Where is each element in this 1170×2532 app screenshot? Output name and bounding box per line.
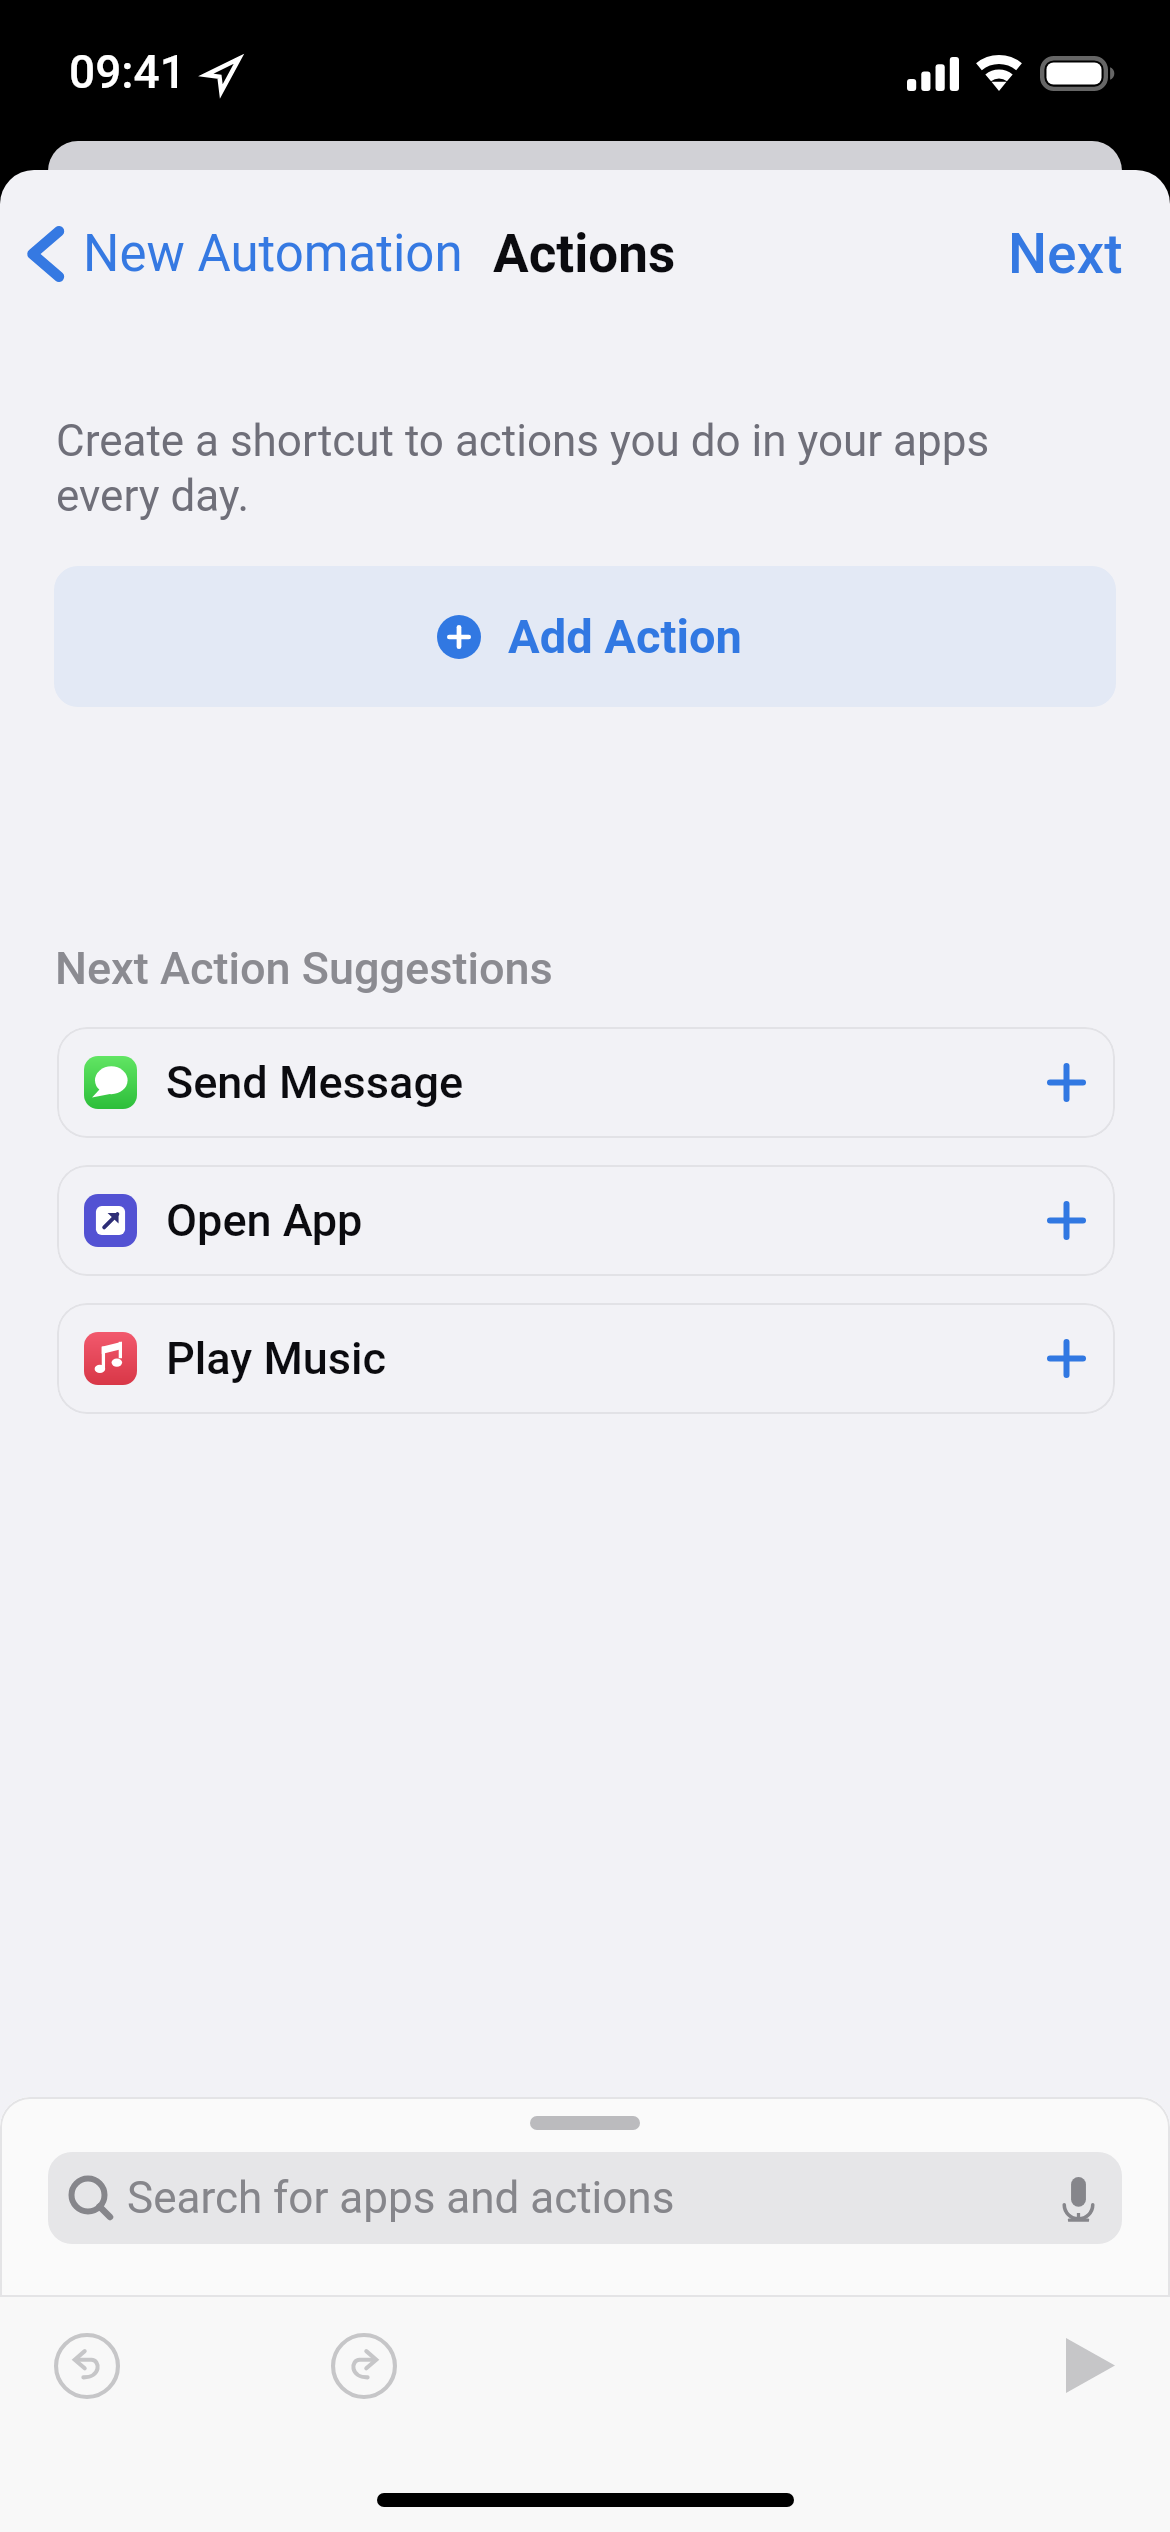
button[interactable]: Add Play Music [1049,1341,1084,1376]
staticText: Search for apps and actions [127,2172,675,2224]
staticText: Create a shortcut to actions you do in y… [56,415,1001,522]
button[interactable]: Undo [54,2333,120,2399]
staticText: New Automation [83,224,463,284]
staticText: Send Message [166,1056,464,1109]
button[interactable]: Play Music [57,1303,1115,1414]
staticText: Actions [493,223,676,285]
staticText: Open App [166,1194,363,1247]
staticText: 09:41 [69,45,186,99]
button[interactable]: Open App [57,1165,1115,1276]
button[interactable]: Add Open App [1049,1203,1084,1238]
staticText: Play Music [166,1332,387,1385]
staticText: Next Action Suggestions [55,942,553,995]
button[interactable]: New Automation [0,208,473,300]
button[interactable]: Add Send Message [1049,1065,1084,1100]
button[interactable]: Search for apps and actions [48,2152,1122,2244]
button[interactable]: Next [978,208,1170,300]
staticText: Add Action [508,609,742,664]
button[interactable]: Redo [331,2333,397,2399]
button[interactable]: Add Action [54,566,1116,707]
other: Dictate [1063,2177,1094,2223]
button[interactable]: Send Message [57,1027,1115,1138]
staticText: Next [1008,222,1123,286]
button[interactable]: Run [1056,2330,1125,2400]
